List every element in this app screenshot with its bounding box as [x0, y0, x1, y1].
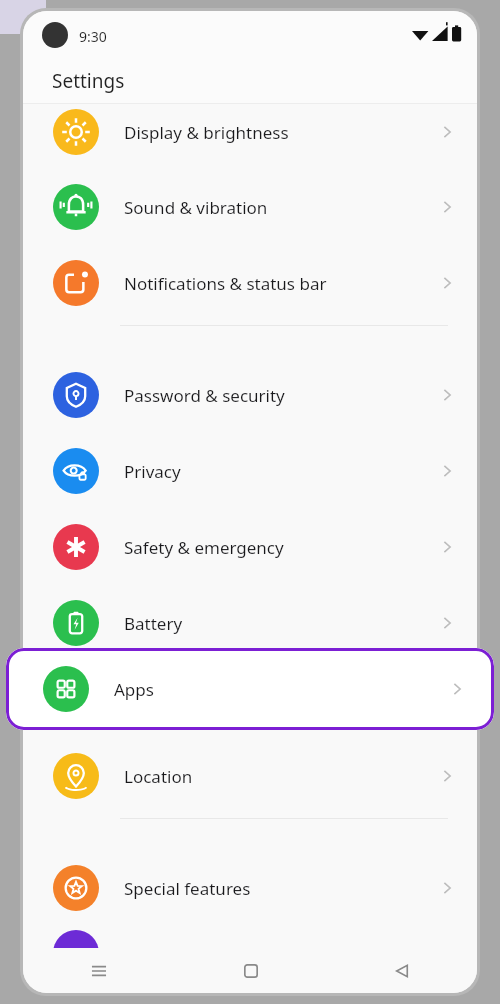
button[interactable]: Apps	[6, 648, 494, 730]
button[interactable]: Safety & emergency	[23, 513, 477, 581]
button[interactable]: Special features	[23, 854, 477, 922]
staticText: Battery	[124, 612, 183, 635]
staticText: Notifications & status bar	[124, 272, 327, 295]
button[interactable]: Privacy	[23, 437, 477, 505]
button[interactable]: Location	[23, 742, 477, 810]
staticText: Apps	[114, 678, 154, 701]
staticText: Location	[124, 765, 193, 788]
button[interactable]: Back	[326, 948, 477, 993]
button[interactable]: Recent apps	[23, 948, 175, 993]
staticText: Special features	[124, 877, 251, 900]
button[interactable]: Display & brightness	[23, 98, 477, 166]
staticText: Safety & emergency	[124, 536, 284, 559]
staticText: 9:30	[79, 27, 107, 46]
button[interactable]: Password & security	[23, 361, 477, 429]
button[interactable]: Sound & vibration	[23, 173, 477, 241]
staticText: Display & brightness	[124, 121, 289, 144]
staticText: Password & security	[124, 384, 285, 407]
staticText: Settings	[52, 68, 125, 94]
button[interactable]: Battery	[23, 589, 477, 657]
button[interactable]: Home	[175, 948, 326, 993]
staticText: Privacy	[124, 460, 181, 483]
staticText: Sound & vibration	[124, 196, 268, 219]
button[interactable]: Notifications & status bar	[23, 249, 477, 317]
